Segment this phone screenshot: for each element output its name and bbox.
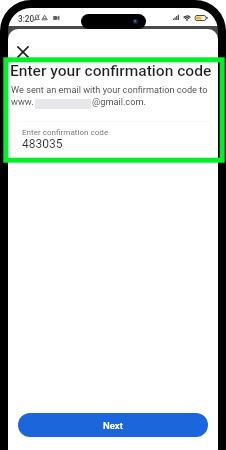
staticText: We sent an email with your confirmation … <box>11 84 208 95</box>
staticText: 3:20 <box>18 14 35 24</box>
button[interactable]: Next <box>18 413 208 437</box>
staticText: www. <box>11 96 34 107</box>
staticText: Enter your confirmation code <box>10 62 212 80</box>
staticText: Next <box>103 420 123 431</box>
button[interactable]: Close <box>9 38 37 66</box>
button[interactable]: Enter confirmation code <box>15 121 212 161</box>
staticText: @gmail.com. <box>92 96 146 107</box>
staticText: Enter confirmation code <box>22 127 109 136</box>
staticText: 483035 <box>22 137 63 151</box>
